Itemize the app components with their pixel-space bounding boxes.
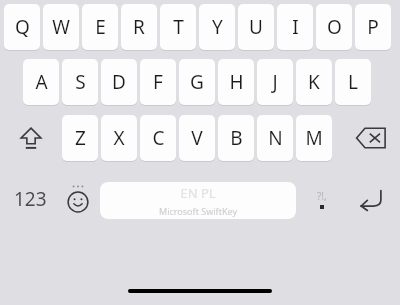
button[interactable]: S <box>62 59 98 105</box>
staticText: 123 <box>14 186 47 212</box>
staticText: EN PL <box>180 184 216 202</box>
staticText: E <box>95 14 106 40</box>
staticText: C <box>152 125 165 151</box>
staticText: U <box>249 14 263 40</box>
staticText: H <box>229 69 244 95</box>
staticText: P <box>367 14 379 40</box>
button[interactable]: K <box>296 59 332 105</box>
staticText: Z <box>75 125 86 151</box>
staticText: N <box>268 125 283 151</box>
button[interactable]: P <box>355 4 391 50</box>
button[interactable]: V <box>179 115 215 161</box>
button[interactable]: E <box>82 4 118 50</box>
staticText: F <box>153 69 163 95</box>
button[interactable]: Shift <box>8 115 54 161</box>
staticText: Microsoft SwiftKey <box>159 205 237 217</box>
button[interactable]: B <box>218 115 254 161</box>
button[interactable]: ?!, <box>300 178 344 220</box>
button[interactable]: L <box>335 59 371 105</box>
staticText: I <box>292 14 299 40</box>
button[interactable]: I <box>277 4 313 50</box>
staticText: R <box>133 14 145 40</box>
button[interactable]: T <box>160 4 196 50</box>
button[interactable]: Q <box>4 4 40 50</box>
button[interactable]: H <box>218 59 254 105</box>
button[interactable]: M <box>296 115 332 161</box>
staticText: X <box>113 125 125 151</box>
button[interactable]: X <box>101 115 137 161</box>
button[interactable]: D <box>101 59 137 105</box>
button[interactable]: U <box>238 4 274 50</box>
staticText: J <box>272 69 278 95</box>
staticText: Y <box>212 14 223 40</box>
button[interactable]: G <box>179 59 215 105</box>
button[interactable]: Y <box>199 4 235 50</box>
staticText: A <box>35 69 48 95</box>
button[interactable]: EN PL <box>100 182 296 219</box>
button[interactable]: W <box>43 4 79 50</box>
button[interactable]: J <box>257 59 293 105</box>
button[interactable]: Enter <box>348 178 394 220</box>
staticText: Q <box>15 14 30 40</box>
button[interactable]: O <box>316 4 352 50</box>
staticText: L <box>348 69 358 95</box>
staticText: S <box>75 69 86 95</box>
staticText: V <box>191 125 203 151</box>
staticText: W <box>52 14 70 40</box>
staticText: M <box>305 125 323 151</box>
staticText: G <box>190 69 204 95</box>
staticText: ?!, <box>317 189 327 203</box>
staticText: B <box>230 125 243 151</box>
staticText: O <box>327 14 342 40</box>
button[interactable]: R <box>121 4 157 50</box>
button[interactable]: Emoji <box>58 178 98 220</box>
button[interactable]: N <box>257 115 293 161</box>
button[interactable]: A <box>23 59 59 105</box>
staticText: D <box>112 69 126 95</box>
button[interactable]: 123 <box>4 178 56 220</box>
staticText: T <box>173 14 184 40</box>
button[interactable]: Z <box>62 115 98 161</box>
button[interactable]: F <box>140 59 176 105</box>
button[interactable]: Backspace <box>348 115 394 161</box>
button[interactable]: C <box>140 115 176 161</box>
staticText: K <box>308 69 320 95</box>
